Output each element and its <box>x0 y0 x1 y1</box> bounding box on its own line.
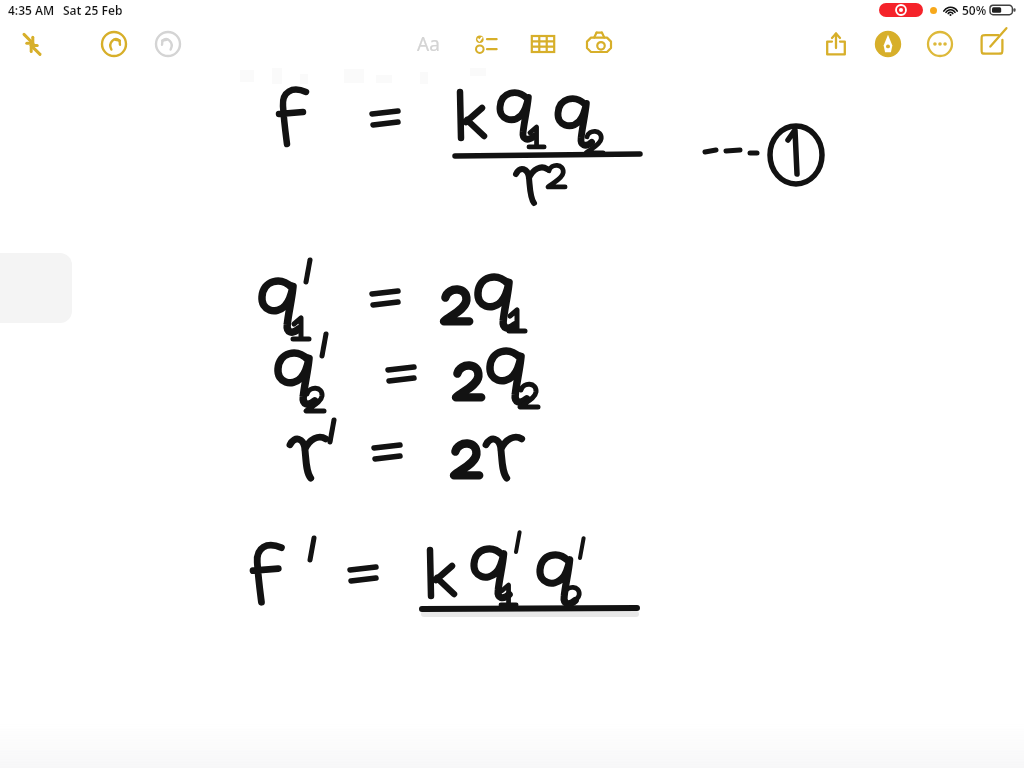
button[interactable]: Markup tools <box>868 24 908 64</box>
button[interactable]: Aa <box>405 21 451 67</box>
button[interactable]: Share <box>816 24 856 64</box>
button[interactable]: Insert table <box>523 24 563 64</box>
staticText: Sat 25 Feb <box>63 2 123 18</box>
button[interactable]: New note <box>972 24 1012 64</box>
staticText: Aa <box>417 31 440 57</box>
button[interactable]: Collapse <box>12 24 52 64</box>
button[interactable]: Redo <box>148 24 188 64</box>
staticText: 50% <box>962 2 987 18</box>
staticText: 4:35 AM <box>8 2 55 18</box>
button[interactable]: Screen recording <box>879 3 923 17</box>
button[interactable]: Undo <box>94 24 134 64</box>
button[interactable]: More options <box>920 24 960 64</box>
button[interactable]: Checklist <box>467 24 507 64</box>
button[interactable]: Insert photo <box>579 24 619 64</box>
